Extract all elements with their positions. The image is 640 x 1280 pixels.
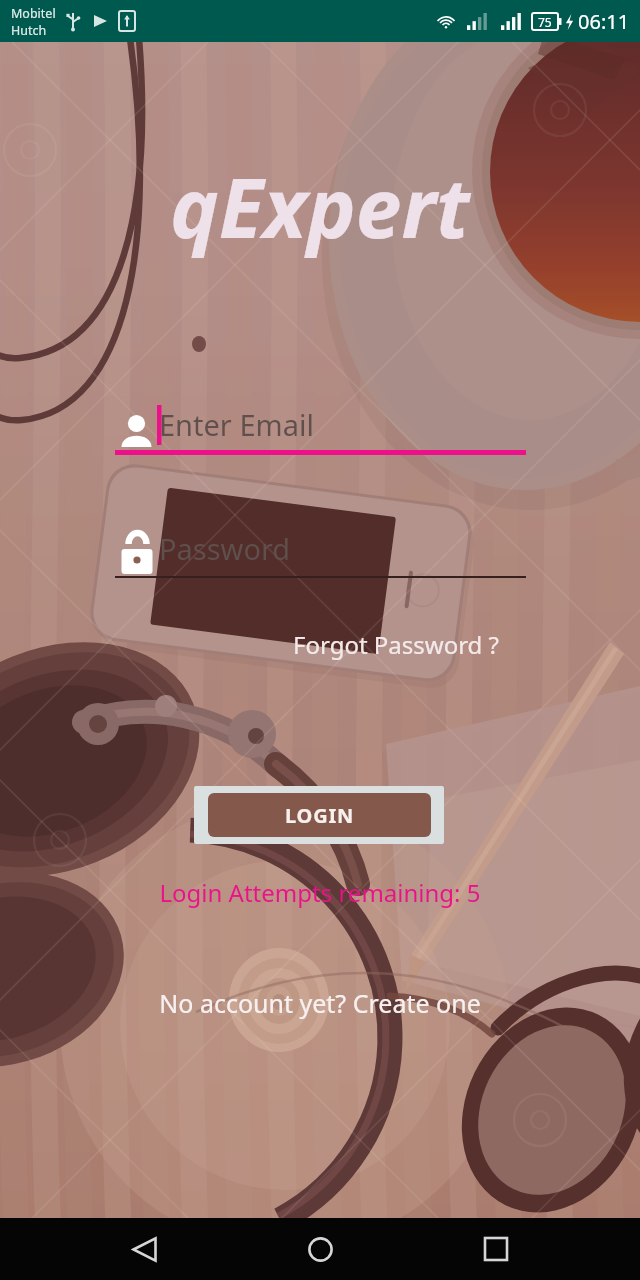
button[interactable]: Enter Email [113, 402, 527, 458]
button[interactable]: Forgot Password ? [293, 628, 500, 661]
staticText: 75 [538, 14, 552, 30]
button[interactable]: Recent apps [464, 1218, 528, 1280]
button[interactable]: Password [113, 528, 527, 582]
staticText: LOGIN [285, 802, 355, 829]
button[interactable]: Back [112, 1218, 176, 1280]
staticText: Password [159, 529, 291, 568]
staticText: Forgot Password ? [293, 628, 500, 661]
button[interactable]: Home [288, 1218, 352, 1280]
staticText: qExpert [170, 150, 470, 262]
staticText: Login Attempts remaining: 5 [0, 876, 640, 909]
button[interactable]: LOGIN [208, 793, 431, 837]
staticText: 06:11 [578, 8, 630, 35]
staticText: No account yet? Create one [0, 986, 640, 1020]
staticText: Mobitel Hutch [11, 5, 56, 38]
staticText: Enter Email [159, 405, 314, 444]
button[interactable]: No account yet? Create one [0, 986, 640, 1020]
